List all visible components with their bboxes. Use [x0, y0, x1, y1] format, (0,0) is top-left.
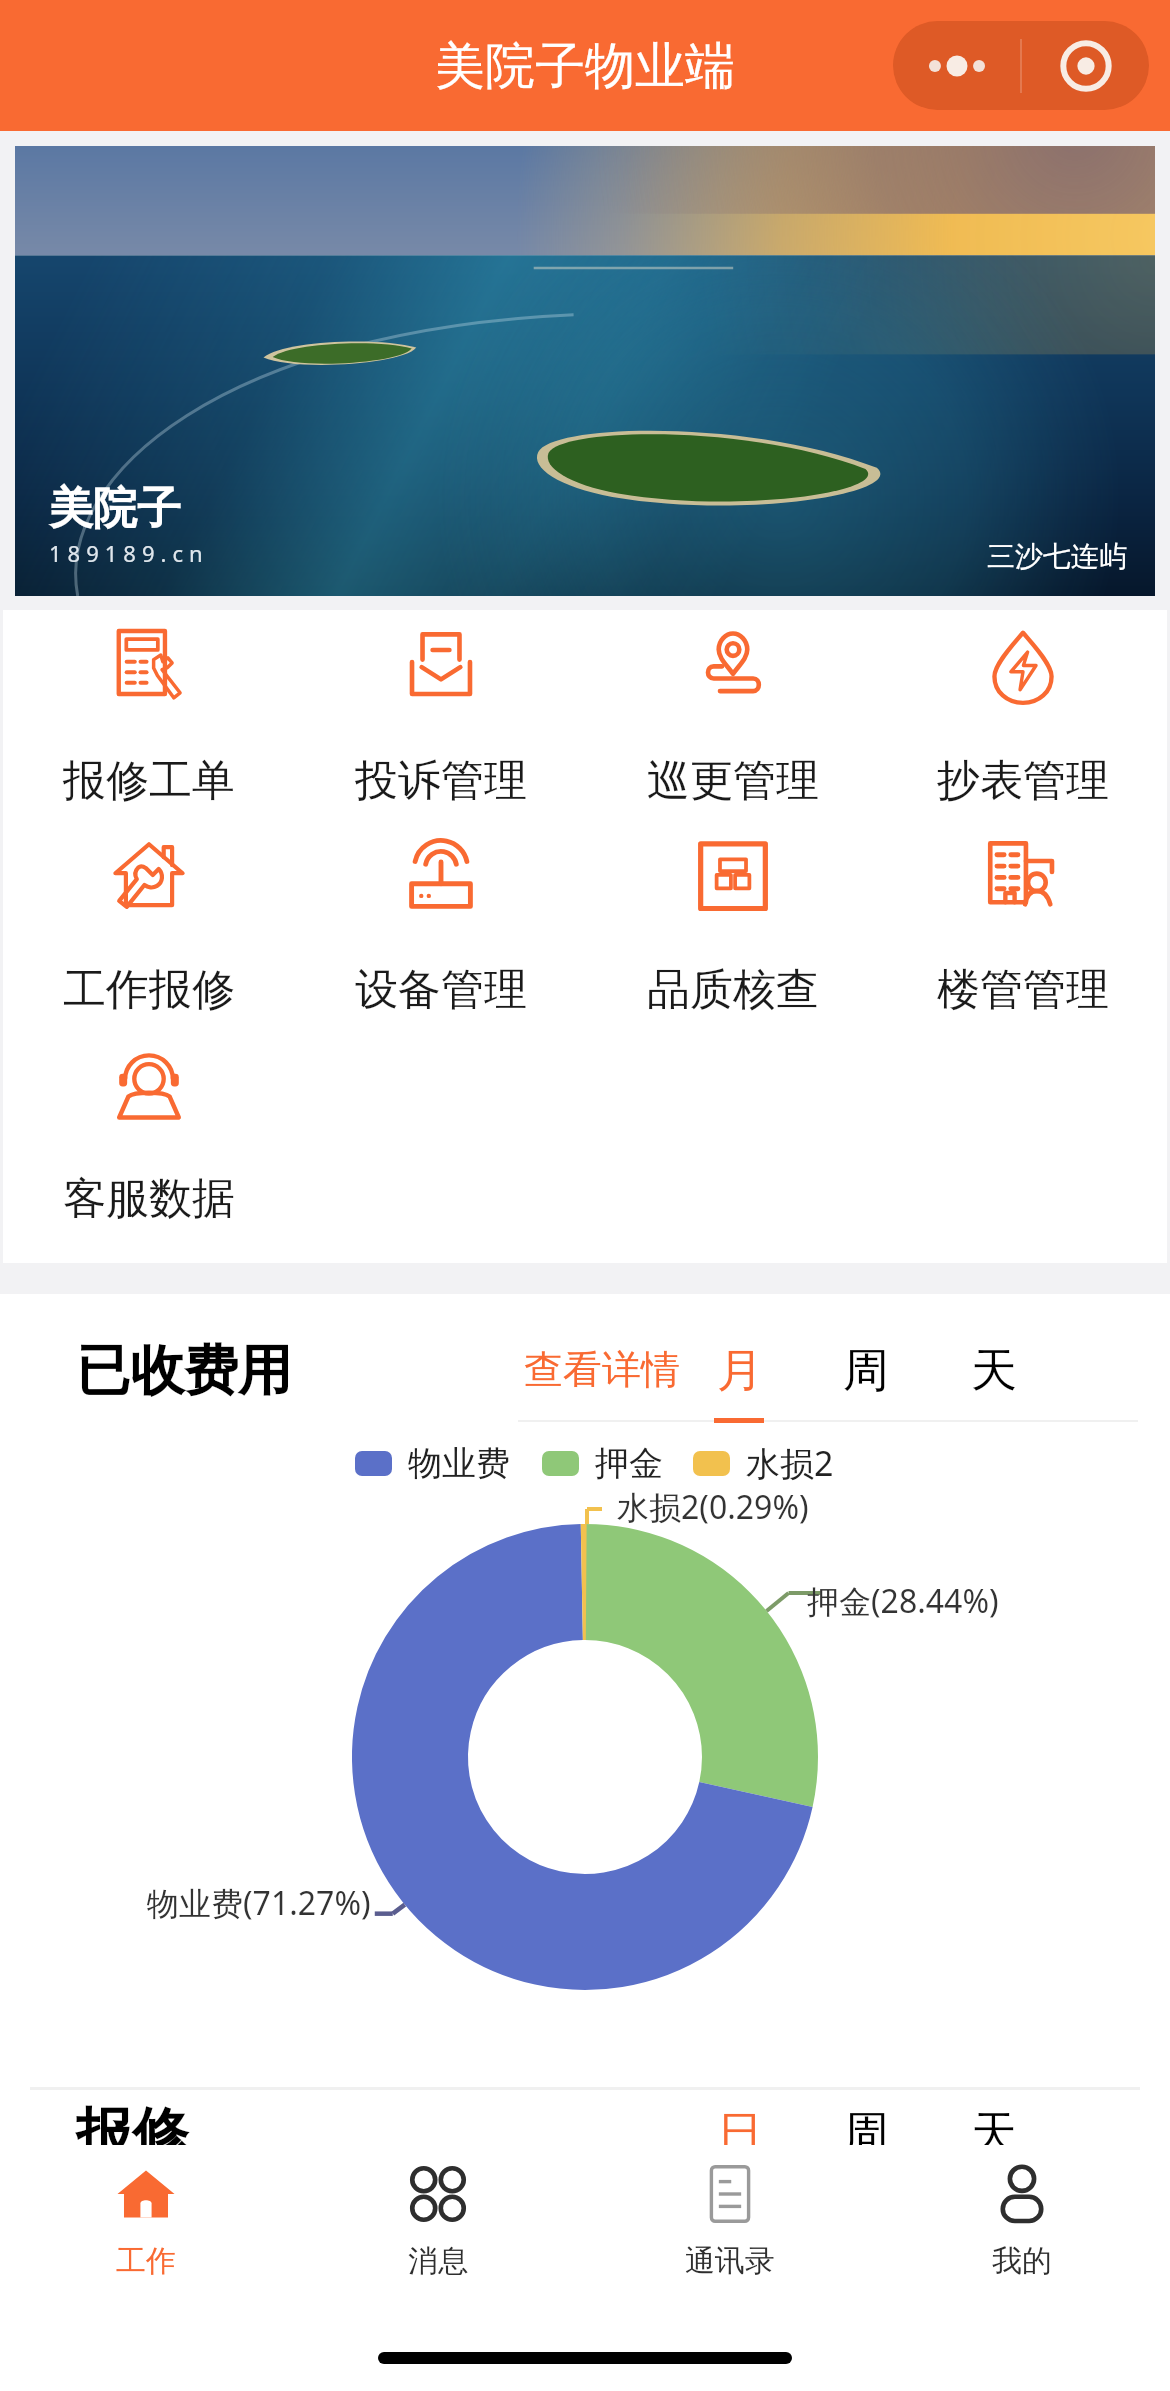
button[interactable]: 投诉管理 [295, 626, 587, 808]
button[interactable]: Close mini program [1022, 21, 1149, 110]
button[interactable]: 客服数据 [3, 1044, 295, 1226]
button[interactable]: 周 [841, 2105, 891, 2165]
button[interactable]: 月 [715, 1342, 765, 1402]
button[interactable]: 我的 [876, 2163, 1168, 2280]
staticText: 抄表管理 [937, 754, 1109, 808]
button[interactable]: 天 [969, 2105, 1019, 2165]
staticText: 周 [843, 1342, 889, 1400]
staticText: 巡更管理 [647, 754, 819, 808]
button[interactable]: 设备管理 [295, 835, 587, 1017]
staticText: 天 [971, 2105, 1017, 2163]
staticText: 客服数据 [63, 1172, 235, 1226]
staticText: 押金(28.44%) [807, 1579, 999, 1623]
staticText: 美院子 [49, 481, 181, 536]
staticText: 周 [843, 2105, 889, 2163]
staticText: 投诉管理 [355, 754, 527, 808]
staticText: 水损2(0.29%) [617, 1485, 809, 1529]
button[interactable]: 工作 [0, 2163, 292, 2280]
staticText: 报修 [76, 2099, 188, 2170]
button[interactable]: 日 [715, 2105, 765, 2165]
button[interactable]: 消息 [292, 2163, 584, 2280]
button[interactable]: 品质核查 [587, 835, 879, 1017]
button[interactable]: 周 [841, 1342, 891, 1402]
staticText: 已收费用 [76, 1337, 292, 1405]
staticText: 通讯录 [685, 2242, 775, 2280]
staticText: 物业费 [408, 1442, 510, 1485]
button[interactable]: 通讯录 [584, 2163, 876, 2280]
staticText: 品质核查 [647, 963, 819, 1017]
staticText: 日 [717, 2105, 763, 2163]
button[interactable]: 报修工单 [3, 626, 295, 808]
button[interactable]: More [893, 21, 1020, 110]
staticText: 水损2 [746, 1440, 834, 1486]
staticText: 三沙七连屿 [987, 539, 1127, 574]
staticText: 189189.cn [49, 538, 209, 568]
staticText: 我的 [992, 2242, 1052, 2280]
button[interactable]: 工作报修 [3, 835, 295, 1017]
staticText: 物业费(71.27%) [147, 1881, 371, 1925]
staticText: 查看详情 [524, 1345, 680, 1394]
staticText: 报修工单 [63, 754, 235, 808]
staticText: 美院子物业端 [435, 35, 735, 98]
button[interactable]: 巡更管理 [587, 626, 879, 808]
button[interactable]: 抄表管理 [879, 626, 1167, 808]
staticText: 月 [717, 1342, 763, 1400]
staticText: 设备管理 [355, 963, 527, 1017]
staticText: 消息 [408, 2242, 468, 2280]
button[interactable]: 楼管管理 [879, 835, 1167, 1017]
staticText: 楼管管理 [937, 963, 1109, 1017]
staticText: 工作 [116, 2242, 176, 2280]
button[interactable]: 天 [969, 1342, 1019, 1402]
staticText: 天 [971, 1342, 1017, 1400]
staticText: 押金 [595, 1442, 663, 1485]
staticText: 工作报修 [63, 963, 235, 1017]
button[interactable]: 查看详情 [524, 1345, 680, 1394]
